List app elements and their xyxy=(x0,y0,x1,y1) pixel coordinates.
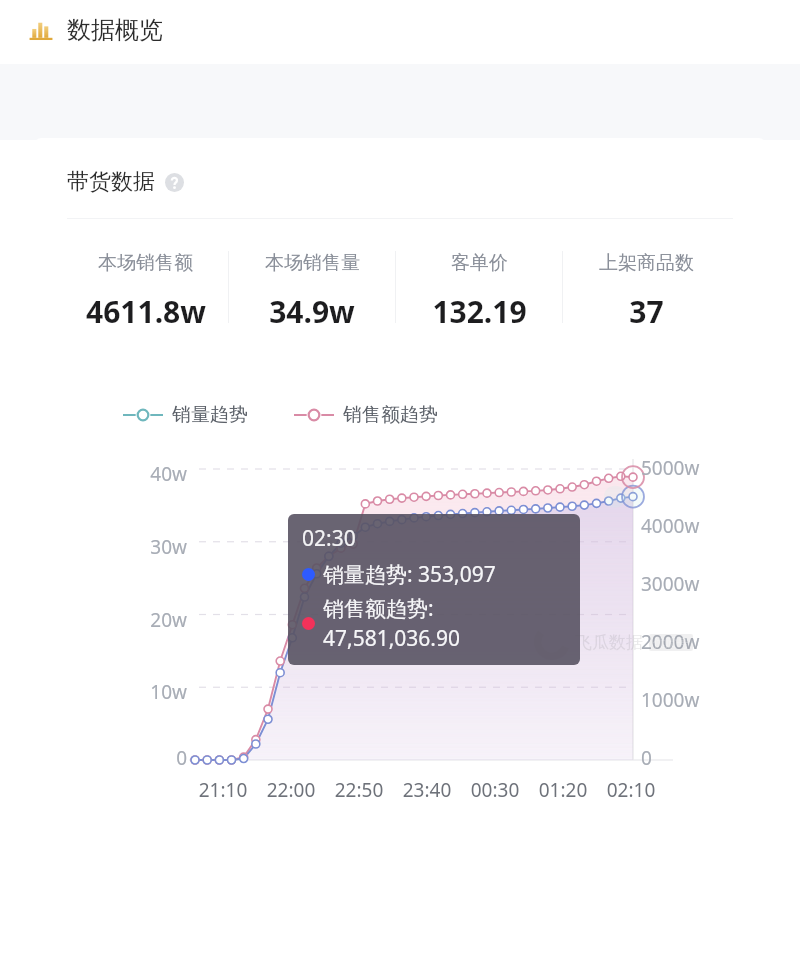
staticText: 40w xyxy=(35,461,187,487)
staticText: 带货数据 xyxy=(67,168,155,196)
staticText: 上架商品数 xyxy=(599,251,694,275)
staticText: 21:10 xyxy=(185,777,261,803)
staticText: 132.19 xyxy=(432,291,527,332)
staticText: 本场销售额 xyxy=(98,251,193,275)
staticText: 0 xyxy=(641,745,652,771)
staticText: 30w xyxy=(35,534,187,560)
staticText: 优质号 xyxy=(653,635,689,650)
staticText: 1000w xyxy=(641,687,700,713)
staticText: 2000w xyxy=(641,629,700,655)
staticText: 销量趋势: 353,097 xyxy=(323,560,496,589)
staticText: 10w xyxy=(35,679,187,705)
button[interactable]: 02:30 xyxy=(288,514,580,665)
staticText: 4000w xyxy=(641,513,700,539)
staticText: 02:10 xyxy=(593,777,669,803)
staticText: 销售额趋势: 47,581,036.90 xyxy=(323,594,566,653)
staticText: 3000w xyxy=(641,571,700,597)
staticText: 20w xyxy=(35,607,187,633)
staticText: 00:30 xyxy=(457,777,533,803)
staticText: 飞瓜数据 xyxy=(575,632,643,653)
button[interactable]: 上架商品数 xyxy=(563,251,729,343)
staticText: 销售额趋势 xyxy=(343,403,438,427)
button[interactable]: 销量趋势 xyxy=(123,403,248,427)
staticText: 4611.8w xyxy=(86,291,206,332)
staticText: 02:30 xyxy=(302,524,356,553)
staticText: 01:20 xyxy=(525,777,601,803)
staticText: 客单价 xyxy=(451,251,508,275)
button[interactable]: 本场销售额 xyxy=(63,251,228,343)
button[interactable]: 销售额趋势 xyxy=(294,403,438,427)
staticText: 本场销售量 xyxy=(265,251,360,275)
staticText: 22:00 xyxy=(253,777,329,803)
staticText: 5000w xyxy=(641,455,700,481)
button[interactable]: 帮助说明 xyxy=(165,173,184,192)
button[interactable]: 本场销售量 xyxy=(229,251,395,343)
staticText: 22:50 xyxy=(321,777,397,803)
other: 数据概览 xyxy=(28,17,54,43)
button[interactable]: 带货数据 xyxy=(67,168,184,196)
staticText: 数据概览 xyxy=(67,15,163,45)
staticText: 23:40 xyxy=(389,777,465,803)
button[interactable]: 客单价 xyxy=(396,251,562,343)
button[interactable]: 数据概览 xyxy=(0,0,800,60)
staticText: 0 xyxy=(35,745,187,771)
staticText: 34.9w xyxy=(269,291,355,332)
staticText: 37 xyxy=(629,291,664,332)
staticText: 销量趋势 xyxy=(172,403,248,427)
